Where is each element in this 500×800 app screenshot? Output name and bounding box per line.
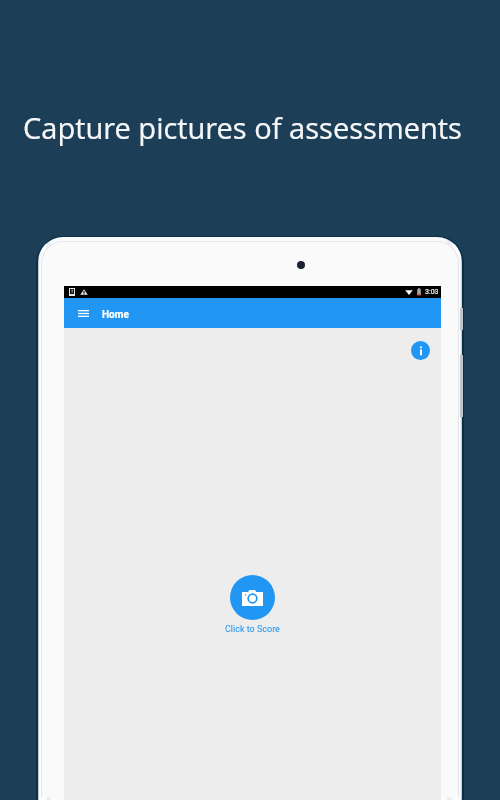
staticText: Capture pictures of assessments — [23, 108, 462, 147]
button[interactable]: Open navigation menu — [72, 302, 94, 324]
button[interactable]: Take a picture to score — [230, 575, 275, 620]
staticText: Click to Score — [225, 624, 280, 635]
button[interactable]: Info — [411, 341, 430, 360]
staticText: 3:03 — [425, 288, 439, 296]
staticText: Home — [102, 309, 129, 321]
